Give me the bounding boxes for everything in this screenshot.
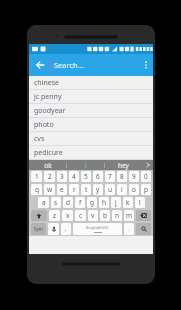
button[interactable]: x [62, 210, 73, 221]
staticText: c [79, 211, 83, 220]
staticText: 2 [48, 172, 52, 181]
button[interactable]: More suggestions [142, 160, 153, 170]
button[interactable]: Shift [31, 210, 47, 221]
button[interactable]: 6 [93, 171, 103, 182]
staticText: 4 [72, 172, 76, 181]
button[interactable]: chinese [29, 76, 153, 90]
button[interactable]: More options [139, 54, 153, 76]
staticText: pedicure [34, 148, 63, 158]
button[interactable]: 8 [117, 171, 127, 182]
button[interactable]: a [38, 197, 49, 208]
staticText: k [126, 198, 130, 207]
button[interactable]: v [88, 210, 98, 221]
staticText: f [79, 198, 82, 207]
button[interactable]: c [75, 210, 86, 221]
button[interactable]: z [49, 210, 60, 221]
staticText: 7 [108, 172, 112, 181]
staticText: goodyear [34, 106, 66, 116]
staticText: t [85, 185, 88, 194]
button[interactable]: ok [29, 160, 66, 170]
staticText: a [42, 198, 46, 207]
button[interactable]: t [81, 184, 91, 195]
staticText: ok [44, 161, 52, 170]
staticText: o [132, 185, 136, 194]
staticText: u [108, 185, 113, 194]
button[interactable]: goodyear [29, 104, 153, 118]
button[interactable]: l [135, 197, 145, 208]
staticText: y [96, 185, 100, 194]
button[interactable]: y [93, 184, 103, 195]
staticText: s [54, 198, 58, 207]
button[interactable]: b [100, 210, 110, 221]
button[interactable]: q [31, 184, 42, 195]
staticText: 3 [60, 172, 64, 181]
staticText: cvs [34, 134, 45, 144]
button[interactable]: Back [29, 54, 51, 76]
staticText: , [65, 225, 67, 233]
button[interactable]: f [75, 197, 85, 208]
button[interactable]: 0 [141, 171, 151, 182]
staticText: e [60, 185, 64, 194]
button[interactable]: pedicure [29, 146, 153, 160]
button[interactable]: 1 [31, 171, 42, 182]
staticText: x [66, 211, 70, 220]
button[interactable]: 4 [69, 171, 79, 182]
button[interactable]: k [123, 197, 133, 208]
button[interactable]: g [87, 197, 97, 208]
button[interactable]: e [57, 184, 67, 195]
button[interactable]: 5 [81, 171, 91, 182]
staticText: b [103, 211, 107, 220]
staticText: photo [34, 120, 54, 130]
button[interactable]: o [129, 184, 139, 195]
staticText: w [47, 185, 53, 194]
button[interactable]: h [99, 197, 109, 208]
button[interactable]: Search [136, 223, 151, 235]
button[interactable]: n [112, 210, 122, 221]
staticText: i [121, 185, 123, 194]
button[interactable]: j [111, 197, 121, 208]
button[interactable]: jc penny [29, 90, 153, 104]
staticText: I [84, 161, 87, 170]
staticText: 5 [84, 172, 88, 181]
button[interactable]: photo [29, 118, 153, 132]
button[interactable]: hey [105, 160, 142, 170]
staticText: r [73, 185, 76, 194]
button[interactable]: m [124, 210, 134, 221]
button[interactable]: i [117, 184, 127, 195]
button[interactable]: 7 [105, 171, 115, 182]
staticText: hey [118, 161, 129, 170]
staticText: 0 [144, 172, 148, 181]
staticText: q [35, 185, 39, 194]
staticText: 9 [132, 172, 136, 181]
staticText: p [144, 185, 148, 194]
staticText: 1 [35, 172, 39, 181]
button[interactable]: u [105, 184, 115, 195]
button[interactable]: , [61, 223, 71, 235]
button[interactable]: Space [73, 223, 122, 235]
staticText: . [128, 225, 130, 233]
staticText: g [90, 198, 94, 207]
button[interactable]: w [44, 184, 55, 195]
button[interactable]: d [63, 197, 73, 208]
button[interactable]: Backspace [136, 210, 151, 221]
staticText: English(US) [86, 225, 109, 231]
button[interactable]: 3 [57, 171, 67, 182]
button[interactable]: 2 [44, 171, 55, 182]
button[interactable]: cvs [29, 132, 153, 146]
button[interactable]: s [51, 197, 61, 208]
button[interactable]: 9 [129, 171, 139, 182]
staticText: chinese [34, 78, 60, 88]
staticText: 6 [96, 172, 100, 181]
button[interactable]: I [67, 160, 104, 170]
staticText: Search... [54, 60, 84, 70]
button[interactable]: . [124, 223, 134, 235]
staticText: m [126, 211, 133, 220]
button[interactable]: r [69, 184, 79, 195]
button[interactable]: p [141, 184, 151, 195]
staticText: 8 [120, 172, 124, 181]
staticText: z [53, 211, 57, 220]
button[interactable]: Search... [54, 54, 139, 76]
staticText: v [91, 211, 95, 220]
button[interactable]: Voice input [48, 223, 59, 235]
button[interactable]: Sym [31, 223, 46, 235]
